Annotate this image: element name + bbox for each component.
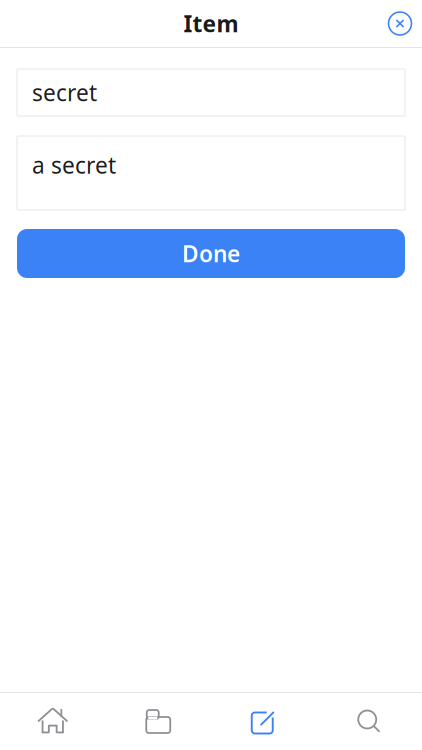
staticText: secret [32,77,97,107]
staticText: a secret [32,150,116,180]
button[interactable]: Files [105,693,211,750]
button[interactable]: Close [378,1,422,45]
button[interactable]: Home [0,693,105,750]
button[interactable]: Compose [211,693,316,750]
staticText: Item [183,8,238,38]
staticText: Done [182,238,240,268]
button[interactable]: Done [17,229,405,278]
button[interactable]: Search [316,693,422,750]
